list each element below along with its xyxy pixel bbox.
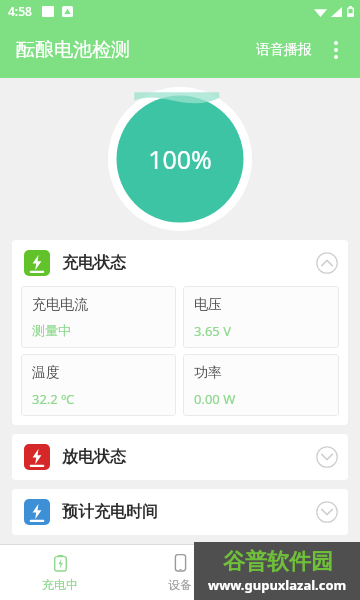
button[interactable]: 温度: [21, 354, 176, 416]
staticText: 100%: [148, 142, 212, 176]
button[interactable]: 充电中: [0, 545, 120, 600]
staticText: 充电状态: [62, 253, 126, 273]
button[interactable]: 充电状态: [12, 240, 348, 286]
staticText: 32.2 ºC: [32, 390, 75, 408]
staticText: 测量中: [32, 322, 71, 338]
staticText: 4:58: [8, 3, 32, 19]
button[interactable]: 放电状态: [12, 434, 348, 480]
staticText: 3.65 V: [194, 322, 231, 340]
staticText: 放电状态: [62, 447, 126, 467]
staticText: 语音播报: [256, 41, 312, 59]
staticText: 温度: [32, 364, 60, 382]
staticText: www.gupuxlazal.com: [208, 576, 347, 594]
staticText: 设备: [168, 577, 192, 592]
staticText: 充电电流: [32, 296, 88, 314]
staticText: 充电中: [42, 577, 78, 592]
staticText: 酝酿电池检测: [16, 38, 130, 62]
staticText: 预计充电时间: [62, 502, 158, 522]
staticText: 功率: [194, 364, 222, 382]
staticText: 电压: [194, 296, 222, 314]
button[interactable]: 功率: [183, 354, 339, 416]
button[interactable]: 充电电流: [21, 286, 176, 348]
staticText: 谷普软件园: [223, 548, 333, 576]
button[interactable]: More options: [316, 30, 356, 70]
button[interactable]: 语音播报: [252, 33, 316, 67]
button[interactable]: 预计充电时间: [12, 489, 348, 535]
button[interactable]: 电压: [183, 286, 339, 348]
staticText: 0.00 W: [194, 390, 236, 408]
button[interactable]: 设备: [120, 545, 240, 600]
